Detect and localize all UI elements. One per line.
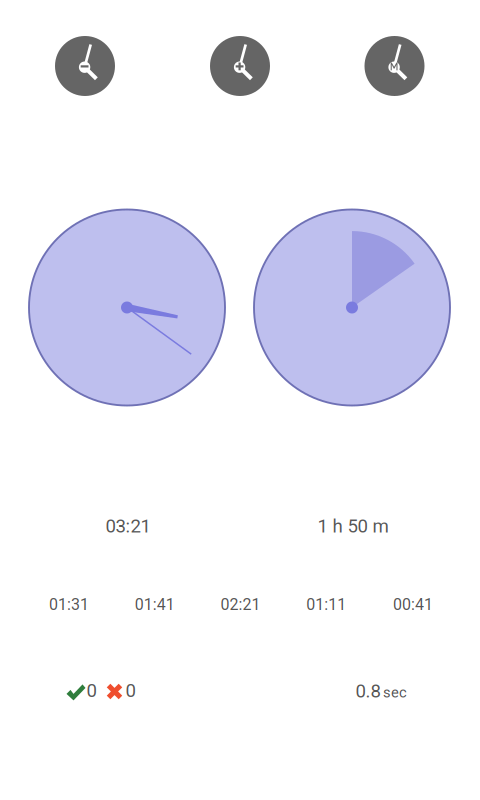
staticText: 03:21: [105, 515, 150, 537]
staticText: sec: [383, 684, 407, 701]
staticText: 02:21: [220, 595, 260, 614]
button[interactable]: Add times: [210, 36, 270, 96]
staticText: 0.8: [355, 680, 380, 702]
button[interactable]: 01:41: [125, 589, 185, 619]
staticText: 0: [125, 680, 135, 702]
staticText: 01:31: [49, 595, 89, 614]
staticText: 00:41: [393, 595, 433, 614]
button[interactable]: 01:11: [296, 589, 356, 619]
button[interactable]: Read the clock: [55, 36, 115, 96]
staticText: 0: [86, 680, 96, 702]
staticText: 1 h 50 m: [317, 515, 388, 537]
button[interactable]: 00:41: [383, 589, 443, 619]
staticText: 01:41: [135, 595, 175, 614]
staticText: 01:11: [306, 595, 346, 614]
button[interactable]: 01:31: [39, 589, 99, 619]
button[interactable]: 02:21: [210, 589, 270, 619]
button[interactable]: Mixed practice: [364, 36, 424, 96]
